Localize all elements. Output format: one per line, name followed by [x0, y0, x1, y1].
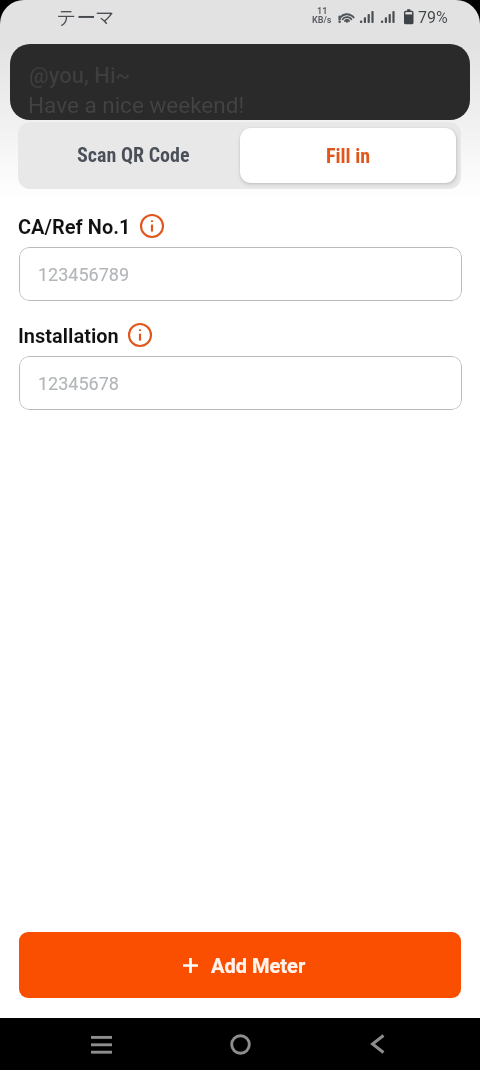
- button[interactable]: 123456789: [19, 247, 462, 301]
- staticText: 123456789: [38, 264, 130, 285]
- staticText: Add Meter: [211, 954, 306, 977]
- staticText: テーマ: [57, 6, 115, 30]
- staticText: Have a nice weekend!: [28, 92, 245, 118]
- button[interactable]: Back: [338, 1024, 418, 1064]
- button[interactable]: Fill in: [240, 128, 456, 183]
- staticText: KB/s: [312, 15, 332, 26]
- staticText: @you, Hi~: [29, 63, 131, 89]
- button[interactable]: Recents: [61, 1024, 141, 1064]
- staticText: 11: [317, 6, 328, 17]
- button[interactable]: 12345678: [19, 356, 462, 410]
- staticText: 79%: [418, 8, 448, 27]
- staticText: Fill in: [326, 144, 371, 167]
- button[interactable]: Home: [200, 1024, 280, 1064]
- button[interactable]: Scan QR Code: [18, 122, 248, 187]
- staticText: Installation: [18, 324, 119, 347]
- button[interactable]: Add Meter: [19, 932, 461, 998]
- button[interactable]: Info: [139, 213, 165, 239]
- staticText: Scan QR Code: [77, 143, 190, 166]
- staticText: 12345678: [38, 373, 119, 394]
- staticText: CA/Ref No.1: [18, 215, 131, 238]
- button[interactable]: Info: [127, 322, 153, 348]
